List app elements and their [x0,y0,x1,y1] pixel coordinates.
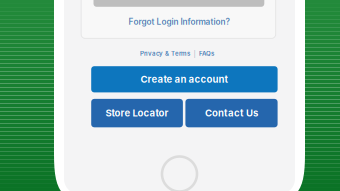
staticText: Privacy & Terms [140,50,190,57]
button[interactable]: Forgot Login Information? [93,12,264,32]
staticText: FAQs [199,50,214,57]
staticText: Create an account [140,73,228,85]
staticText: | [193,49,195,58]
staticText: Contact Us [205,107,258,119]
button[interactable]: Create an account [91,66,278,92]
button[interactable]: FAQs [199,48,214,59]
button[interactable]: Store Locator [91,99,183,127]
staticText: Forgot Login Information? [128,17,229,27]
button[interactable]: Privacy & Terms [140,48,190,59]
staticText: Store Locator [106,107,169,119]
button[interactable]: Contact Us [185,99,278,127]
